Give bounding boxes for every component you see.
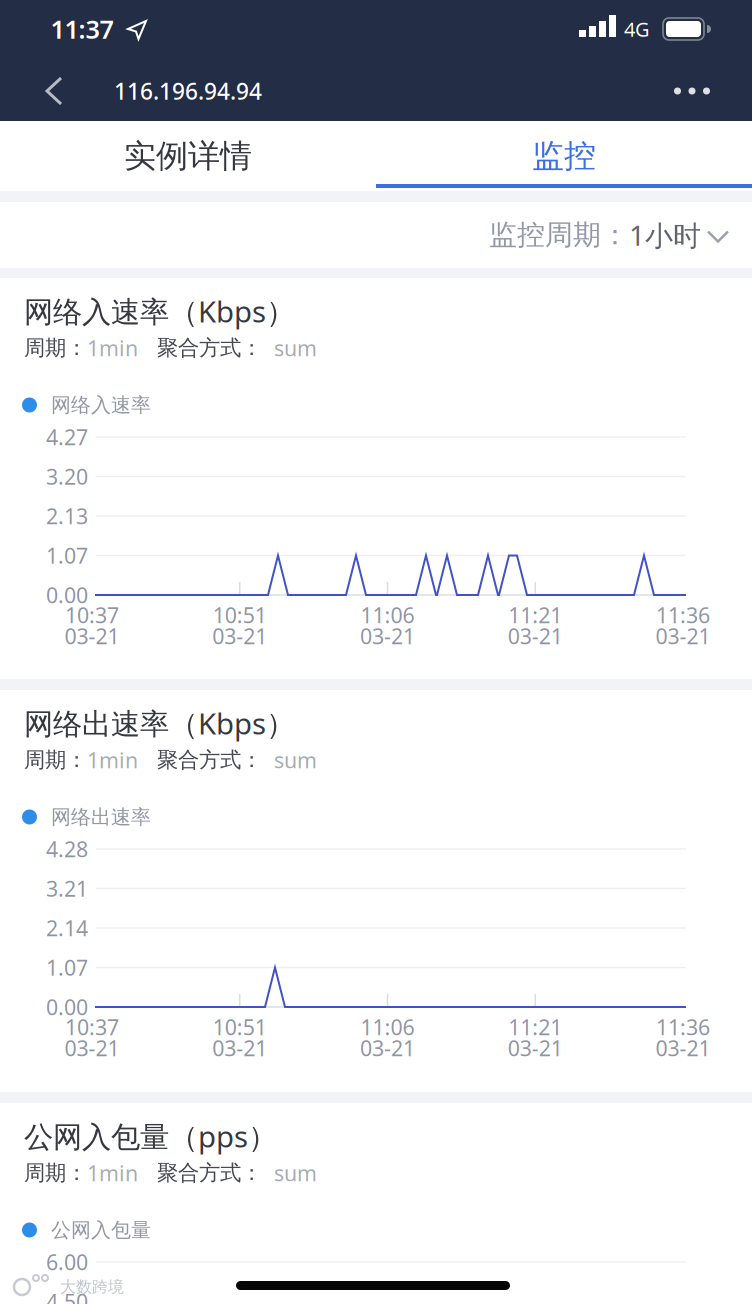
staticText: 116.196.94.94 bbox=[114, 76, 262, 106]
staticText: 11:36 bbox=[656, 1013, 710, 1041]
staticText: 监控周期： bbox=[489, 218, 629, 252]
staticText: 10:37 bbox=[65, 601, 119, 629]
staticText: 10:37 bbox=[65, 1013, 119, 1041]
button[interactable]: Back bbox=[40, 73, 68, 109]
staticText: 4.27 bbox=[46, 423, 88, 451]
staticText: 1min bbox=[87, 746, 138, 774]
staticText: 11:37 bbox=[50, 12, 113, 46]
staticText: 4.28 bbox=[46, 835, 88, 863]
staticText: 公网入包量 bbox=[51, 1218, 151, 1242]
staticText: 03-21 bbox=[64, 1034, 119, 1062]
staticText: 6.00 bbox=[46, 1248, 88, 1276]
staticText: 03-21 bbox=[655, 622, 710, 650]
staticText: 03-21 bbox=[508, 622, 563, 650]
staticText: 网络出速率 bbox=[51, 805, 151, 829]
staticText: sum bbox=[274, 1159, 317, 1187]
staticText: 2.14 bbox=[46, 914, 88, 942]
staticText: 1.07 bbox=[46, 541, 88, 570]
staticText: 11:21 bbox=[508, 601, 562, 629]
staticText: 4.50 bbox=[46, 1287, 88, 1304]
staticText: 聚合方式： bbox=[157, 1160, 262, 1186]
staticText: sum bbox=[274, 334, 317, 362]
staticText: 11:21 bbox=[508, 1013, 562, 1041]
staticText: 实例详情 bbox=[124, 136, 252, 176]
staticText: 3.20 bbox=[46, 462, 88, 491]
staticText: 1min bbox=[87, 1159, 138, 1187]
staticText: 03-21 bbox=[360, 622, 415, 650]
staticText: 4G bbox=[624, 16, 650, 42]
staticText: 聚合方式： bbox=[157, 335, 262, 361]
staticText: 1小时 bbox=[629, 216, 701, 254]
staticText: sum bbox=[274, 746, 317, 774]
staticText: 03-21 bbox=[64, 622, 119, 650]
staticText: 周期： bbox=[24, 747, 87, 773]
staticText: 2.13 bbox=[46, 502, 88, 530]
staticText: 10:51 bbox=[213, 1013, 267, 1041]
button[interactable]: 监控周期： bbox=[489, 216, 732, 254]
staticText: 网络入速率 bbox=[51, 393, 151, 417]
staticText: 网络出速率（Kbps） bbox=[24, 703, 295, 742]
staticText: 03-21 bbox=[655, 1034, 710, 1062]
staticText: 03-21 bbox=[508, 1034, 563, 1062]
staticText: 网络入速率（Kbps） bbox=[24, 291, 295, 330]
staticText: 0.00 bbox=[46, 581, 88, 609]
staticText: 公网入包量（pps） bbox=[24, 1116, 277, 1155]
staticText: 11:06 bbox=[360, 1013, 414, 1041]
staticText: 周期： bbox=[24, 1160, 87, 1186]
staticText: 0.00 bbox=[46, 993, 88, 1021]
button[interactable]: More bbox=[664, 77, 720, 104]
staticText: 11:06 bbox=[360, 601, 414, 629]
button[interactable]: 监控 bbox=[376, 121, 752, 191]
staticText: 周期： bbox=[24, 335, 87, 361]
staticText: 11:36 bbox=[656, 601, 710, 629]
staticText: 10:51 bbox=[213, 601, 267, 629]
staticText: 03-21 bbox=[212, 1034, 267, 1062]
staticText: 大数跨境 bbox=[60, 1277, 124, 1297]
staticText: 03-21 bbox=[212, 622, 267, 650]
staticText: 1.07 bbox=[46, 953, 88, 982]
staticText: 3.21 bbox=[46, 874, 88, 903]
staticText: 监控 bbox=[532, 136, 596, 176]
staticText: 1min bbox=[87, 334, 138, 362]
button[interactable]: 实例详情 bbox=[0, 121, 376, 191]
staticText: 03-21 bbox=[360, 1034, 415, 1062]
staticText: 聚合方式： bbox=[157, 747, 262, 773]
